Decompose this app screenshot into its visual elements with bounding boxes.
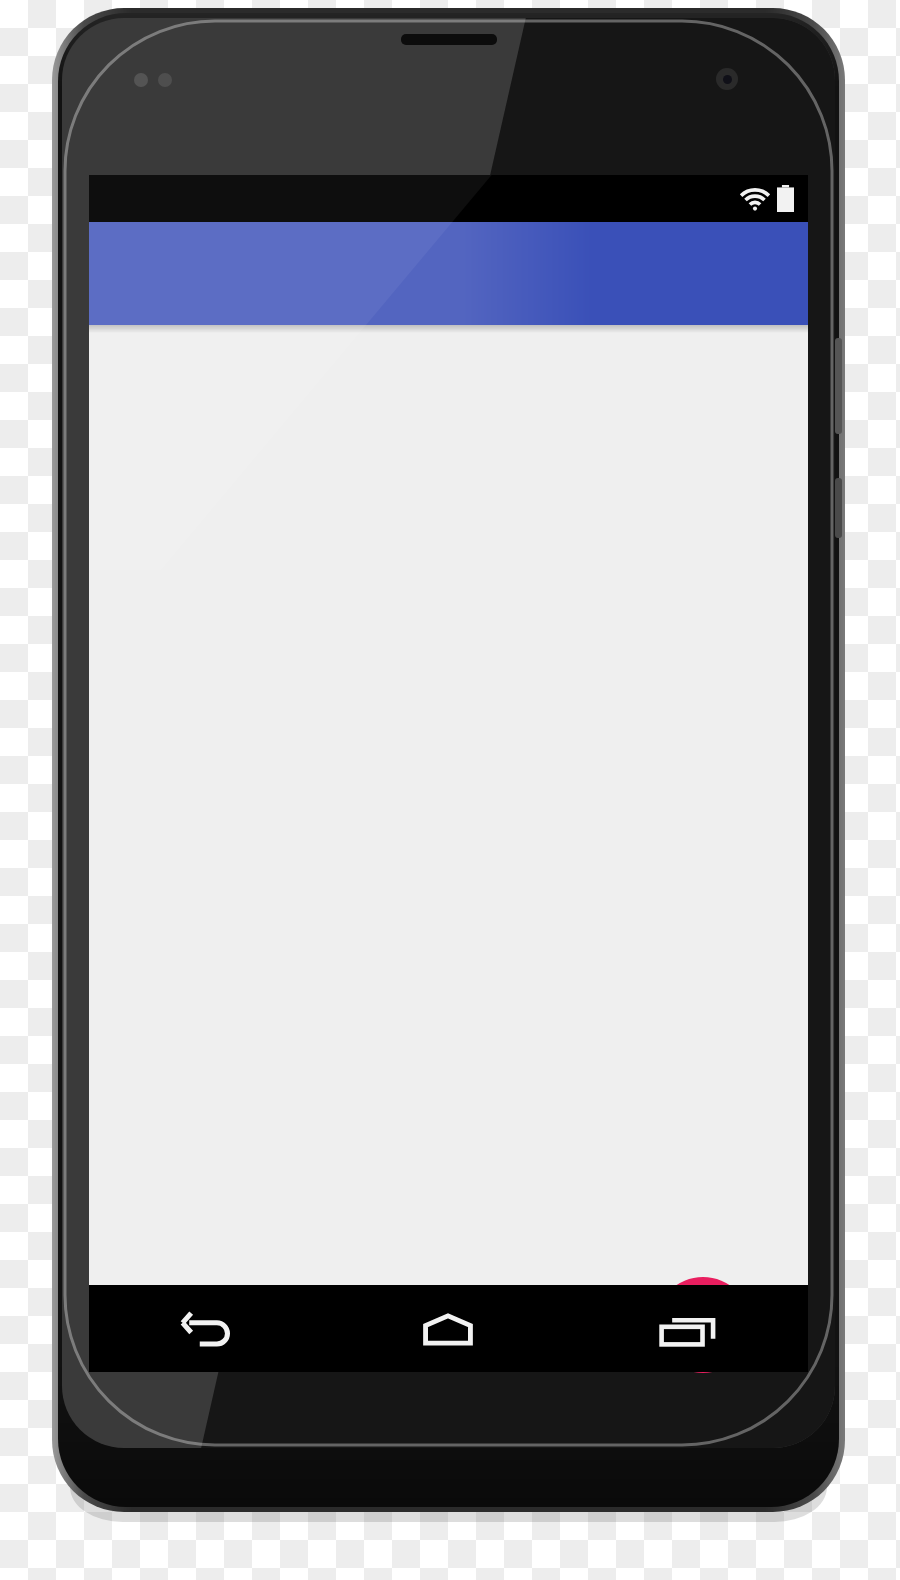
button[interactable]: Back (89, 1285, 328, 1372)
button[interactable]: Recent apps (568, 1285, 808, 1372)
button[interactable]: Add (655, 1277, 751, 1373)
button[interactable]: Home (328, 1285, 568, 1372)
button[interactable] (89, 222, 808, 325)
